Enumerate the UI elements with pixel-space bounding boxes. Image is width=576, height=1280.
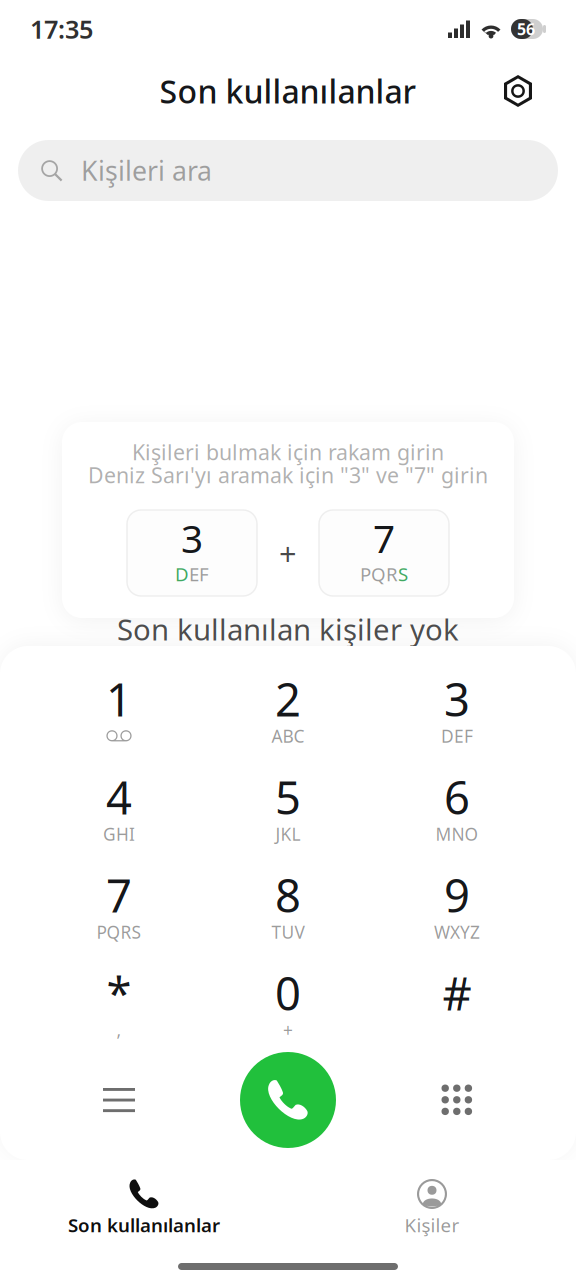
button[interactable]: 9 [372, 856, 541, 954]
staticText: R [120, 920, 131, 943]
staticText: + [283, 1018, 293, 1041]
staticText: Z [470, 920, 480, 943]
staticText: 6 [444, 767, 470, 827]
staticText: 17:35 [30, 12, 93, 46]
button[interactable]: 8 [203, 856, 372, 954]
button[interactable]: 4 [34, 758, 203, 856]
staticText: E [454, 724, 464, 747]
staticText: # [442, 963, 471, 1023]
staticText: 3 [444, 669, 470, 729]
button[interactable]: Menu [34, 1052, 203, 1148]
button[interactable]: 3 [372, 660, 541, 758]
staticText: F [199, 562, 209, 586]
staticText: 0 [275, 963, 301, 1023]
staticText: Kişileri bulmak için rakam girin [132, 438, 444, 466]
button[interactable]: # [372, 954, 541, 1052]
staticText: F [464, 724, 473, 747]
staticText: Kişiler [404, 1213, 459, 1237]
staticText: 2 [275, 669, 301, 729]
button[interactable]: 6 [372, 758, 541, 856]
staticText: M [435, 822, 451, 845]
staticText: Q [371, 562, 386, 586]
staticText: N [451, 822, 464, 845]
staticText: I [129, 822, 135, 845]
button[interactable]: 0 [203, 954, 372, 1052]
staticText: 7 [373, 512, 395, 564]
staticText: Kişileri ara [81, 153, 212, 188]
staticText: 1 [106, 669, 132, 729]
staticText: G [103, 822, 116, 845]
staticText: D [441, 724, 454, 747]
staticText: S [398, 562, 408, 586]
staticText: R [386, 562, 398, 586]
staticText: + [279, 533, 297, 573]
staticText: X [450, 920, 460, 943]
staticText: 5 [275, 767, 301, 827]
button[interactable]: 7 [34, 856, 203, 954]
staticText: C [293, 724, 304, 747]
staticText: L [291, 822, 300, 845]
staticText: P [360, 562, 371, 586]
staticText: V [294, 920, 304, 943]
staticText: T [271, 920, 281, 943]
button[interactable]: Kişiler [288, 1160, 576, 1235]
staticText: O [464, 822, 478, 845]
button[interactable]: Settings [490, 61, 546, 121]
staticText: 9 [444, 865, 470, 925]
staticText: Q [106, 920, 120, 943]
staticText: 8 [275, 865, 301, 925]
button[interactable]: * [34, 954, 203, 1052]
staticText: E [189, 562, 199, 586]
staticText: S [131, 920, 141, 943]
staticText: D [175, 562, 189, 586]
staticText: 7 [106, 865, 132, 925]
staticText: , [116, 1018, 121, 1041]
button[interactable]: Call [240, 1052, 336, 1148]
button[interactable]: 5 [203, 758, 372, 856]
staticText: 56 [517, 18, 535, 40]
staticText: P [96, 920, 106, 943]
staticText: A [271, 724, 282, 747]
staticText: * [106, 963, 131, 1023]
staticText: H [116, 822, 129, 845]
staticText: Y [460, 920, 470, 943]
staticText: Son kullanılanlar [159, 70, 416, 112]
staticText: U [281, 920, 294, 943]
button[interactable]: Son kullanılanlar [0, 1160, 288, 1235]
button[interactable]: Kişileri ara [18, 140, 558, 201]
staticText: Deniz Sarı'yı aramak için "3" ve "7" gir… [88, 461, 488, 489]
button[interactable]: 2 [203, 660, 372, 758]
button[interactable]: 1 [34, 660, 203, 758]
staticText: Son kullanılanlar [68, 1213, 220, 1237]
staticText: J [275, 822, 280, 845]
staticText: K [280, 822, 291, 845]
staticText: B [282, 724, 293, 747]
button[interactable]: Keypad [372, 1052, 541, 1148]
staticText: 3 [181, 512, 203, 564]
staticText: W [434, 920, 450, 943]
staticText: Son kullanılan kişiler yok [117, 609, 459, 648]
staticText: 4 [106, 767, 132, 827]
